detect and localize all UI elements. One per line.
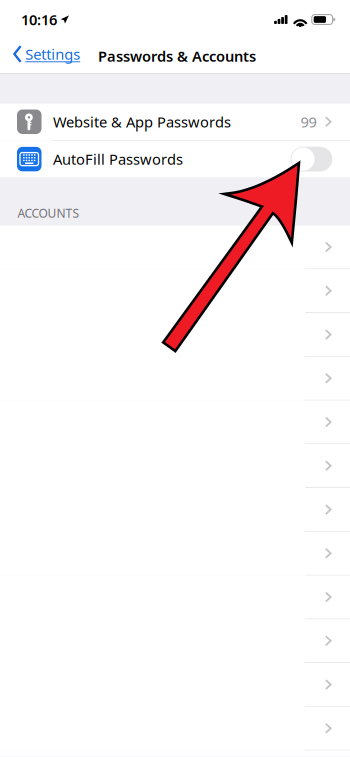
button[interactable]: Account <box>0 225 350 269</box>
staticText: Settings <box>25 44 80 64</box>
button[interactable]: Account <box>0 313 350 357</box>
staticText: Website & App Passwords <box>53 112 231 131</box>
staticText: AutoFill Passwords <box>53 149 183 169</box>
staticText: Passwords & Accounts <box>98 46 256 66</box>
button[interactable]: Settings <box>0 38 80 70</box>
button[interactable]: Account <box>0 269 350 313</box>
staticText: ACCOUNTS <box>17 205 79 221</box>
staticText: 10:16 <box>21 10 57 29</box>
button[interactable]: Website & App Passwords <box>0 103 350 140</box>
staticText: 99 <box>300 112 316 131</box>
button[interactable]: AutoFill Passwords <box>0 141 350 177</box>
